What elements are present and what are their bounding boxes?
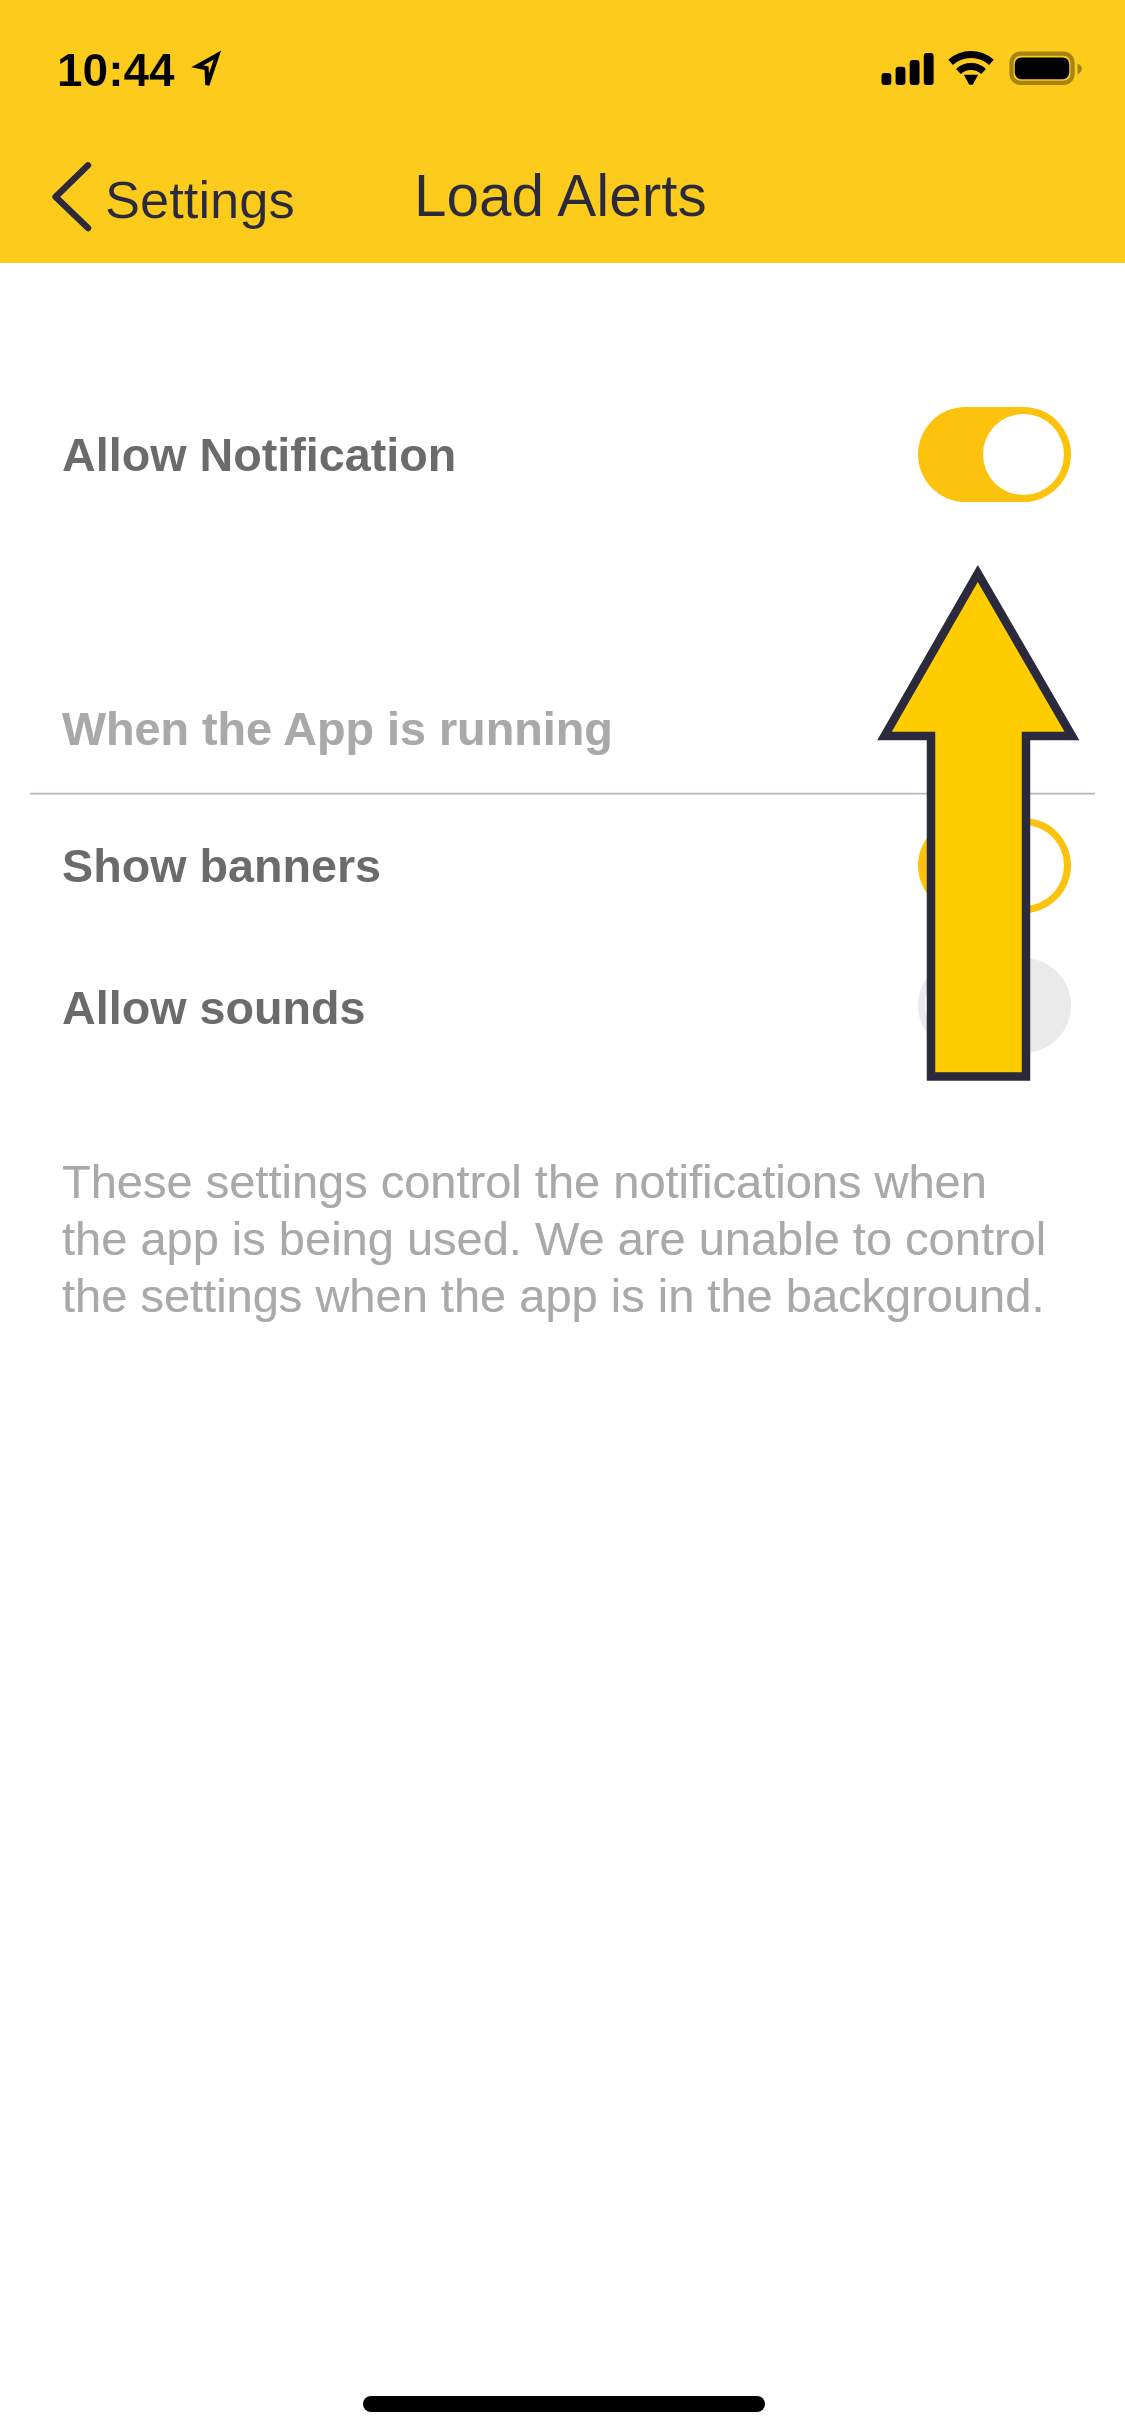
- button[interactable]: Allow Notification: [0, 388, 1125, 520]
- staticText: These settings control the notifications…: [62, 1152, 1062, 1323]
- button[interactable]: Allow sounds toggle: [918, 958, 1071, 1053]
- button[interactable]: Back: [50, 158, 96, 236]
- button[interactable]: Allow Notification toggle: [918, 407, 1071, 502]
- staticText: Load Alerts: [414, 163, 707, 228]
- staticText: When the App is running: [62, 703, 613, 755]
- staticText: Allow Notification: [62, 429, 457, 481]
- button[interactable]: Show banners: [0, 797, 1125, 933]
- staticText: Allow sounds: [62, 982, 366, 1034]
- staticText: Show banners: [62, 840, 382, 892]
- button[interactable]: Settings: [105, 170, 295, 229]
- staticText: 10:44: [57, 44, 175, 95]
- button[interactable]: Show banners toggle: [918, 818, 1071, 913]
- button[interactable]: Allow sounds: [0, 937, 1125, 1073]
